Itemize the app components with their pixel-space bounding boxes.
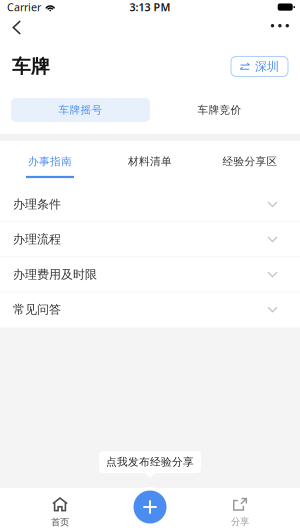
staticText: 车牌摇号: [58, 103, 102, 116]
button[interactable]: 首页: [0, 488, 120, 532]
staticText: 办理条件: [13, 197, 61, 211]
staticText: 车牌: [12, 55, 50, 78]
staticText: 办事指南: [28, 155, 72, 168]
button[interactable]: More options: [260, 20, 300, 46]
button[interactable]: Back: [0, 20, 31, 46]
button[interactable]: 办理条件: [0, 187, 300, 222]
button[interactable]: 分享: [180, 488, 300, 532]
staticText: 首页: [51, 516, 69, 528]
staticText: Carrier: [7, 0, 41, 14]
staticText: 材料清单: [128, 155, 172, 168]
staticText: 3:13 PM: [129, 0, 170, 14]
staticText: 深圳: [255, 59, 279, 74]
staticText: 车牌竞价: [197, 103, 241, 116]
staticText: 办理费用及时限: [13, 267, 97, 282]
staticText: 办理流程: [13, 232, 61, 247]
staticText: 点我发布经验分享: [106, 455, 194, 468]
button[interactable]: 材料清单: [100, 141, 200, 187]
staticText: 分享: [231, 516, 249, 527]
button[interactable]: 办理费用及时限: [0, 257, 300, 292]
staticText: 经验分享区: [222, 155, 277, 168]
button[interactable]: 经验分享区: [200, 141, 300, 187]
button[interactable]: 常见问答: [0, 292, 300, 327]
button[interactable]: 车牌摇号: [11, 98, 150, 122]
button[interactable]: Add post: [129, 486, 171, 528]
button[interactable]: 车牌竞价: [150, 98, 289, 122]
button[interactable]: 深圳: [231, 56, 288, 76]
button[interactable]: 办事指南: [0, 141, 100, 187]
button[interactable]: 办理流程: [0, 222, 300, 257]
staticText: 常见问答: [13, 302, 61, 317]
